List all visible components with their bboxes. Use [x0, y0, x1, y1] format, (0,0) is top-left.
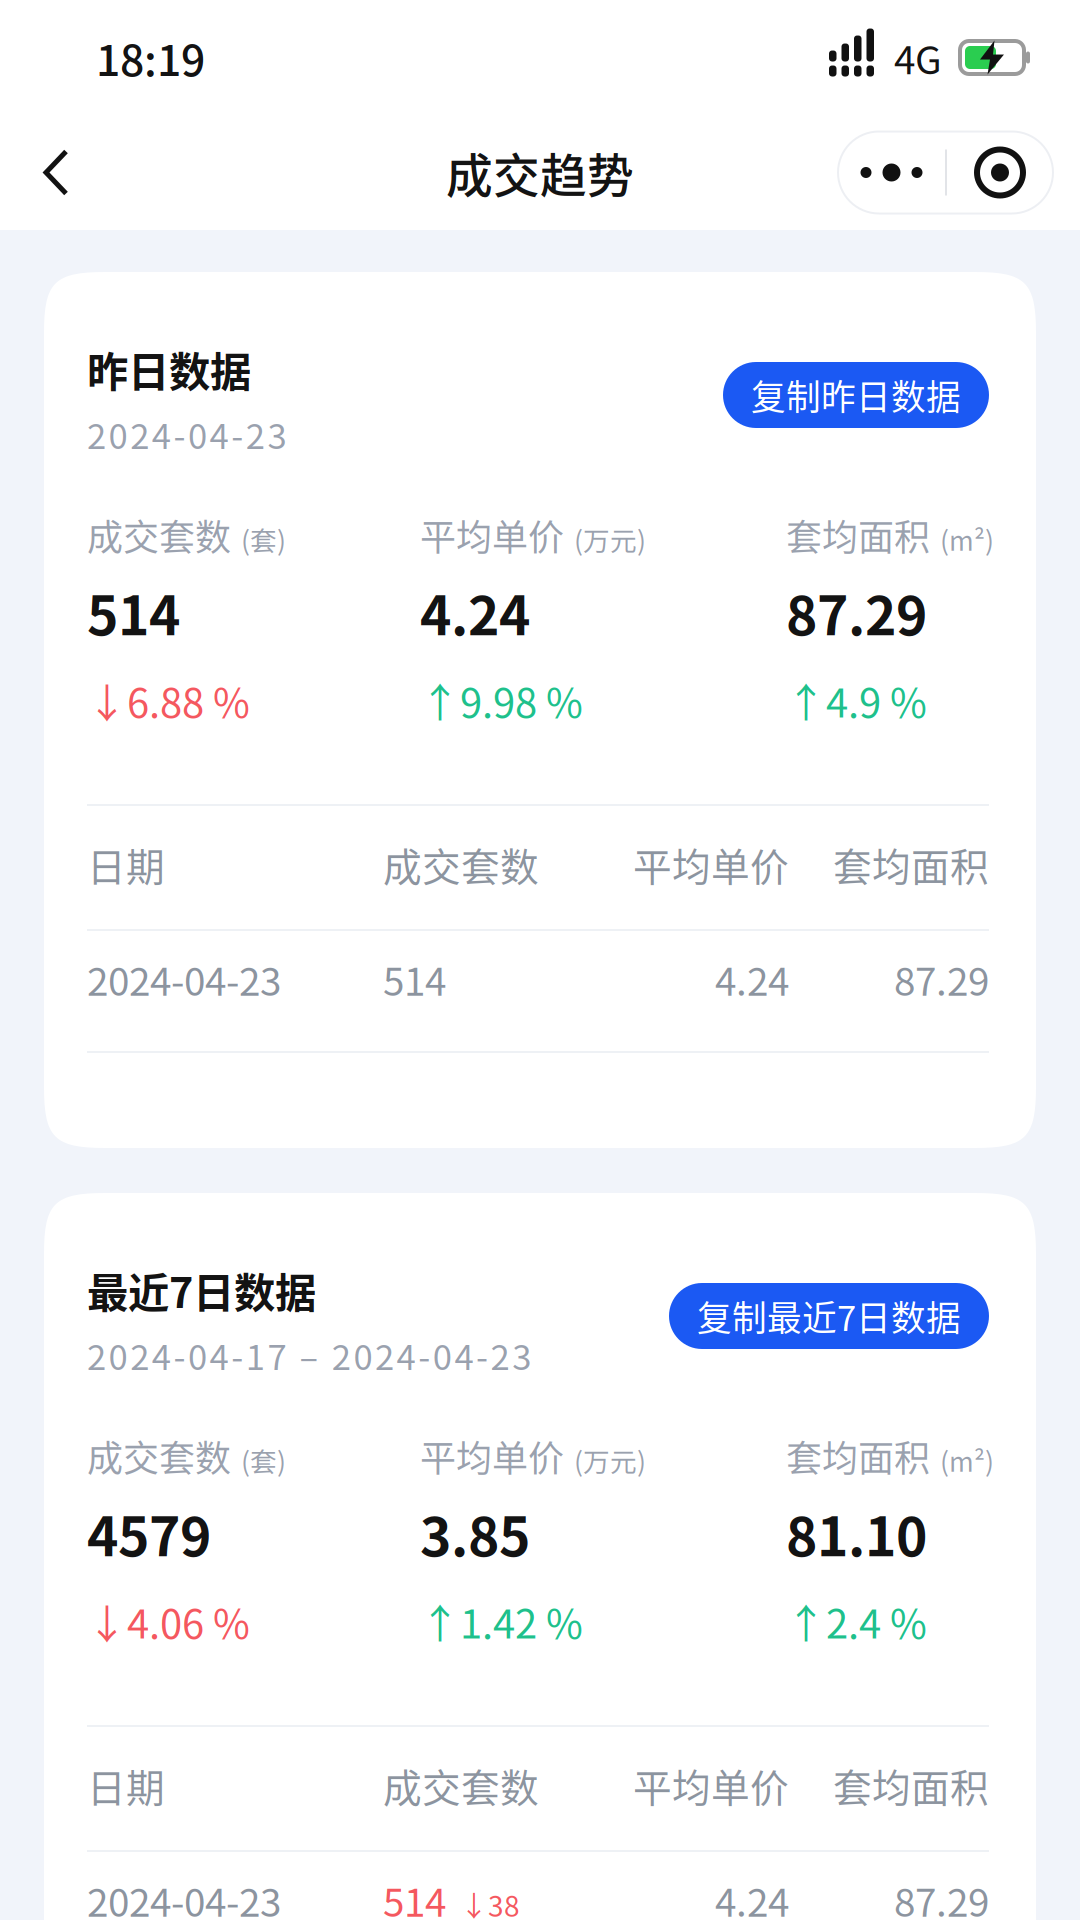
- staticText: 成交套数: [87, 509, 231, 561]
- staticText: 4579: [87, 1494, 211, 1572]
- staticText: ↓6.88 %: [87, 671, 250, 729]
- staticText: 2024-04-23: [87, 409, 286, 459]
- staticText: (m²): [940, 1441, 994, 1479]
- button[interactable]: 复制最近7日数据: [669, 1283, 989, 1349]
- staticText: ↑9.98 %: [420, 671, 583, 729]
- staticText: 4G: [894, 29, 942, 85]
- staticText: 514: [87, 573, 180, 651]
- staticText: 套均面积: [833, 1757, 989, 1813]
- staticText: 套均面积: [833, 836, 989, 892]
- staticText: ↑4.9 %: [786, 671, 927, 729]
- button[interactable]: Back: [0, 115, 112, 230]
- staticText: 套均面积: [786, 1430, 930, 1482]
- staticText: 成交套数: [383, 1757, 539, 1813]
- staticText: 18:19: [96, 27, 205, 88]
- staticText: 2024-04-23: [87, 951, 281, 1007]
- staticText: ↑1.42 %: [420, 1592, 583, 1650]
- staticText: 87.29: [894, 951, 989, 1007]
- staticText: 平均单价: [420, 1430, 564, 1482]
- staticText: 套均面积: [786, 509, 930, 561]
- staticText: (万元): [574, 520, 646, 558]
- staticText: 平均单价: [633, 836, 789, 892]
- staticText: 成交套数: [87, 1430, 231, 1482]
- staticText: 4.24: [715, 951, 789, 1007]
- staticText: 4.24: [715, 1872, 789, 1920]
- staticText: 日期: [87, 1757, 165, 1813]
- staticText: 87.29: [894, 1872, 989, 1920]
- staticText: 2024-04-17 – 2024-04-23: [87, 1330, 531, 1380]
- staticText: 昨日数据: [87, 339, 251, 399]
- staticText: ↑2.4 %: [786, 1592, 927, 1650]
- staticText: 514: [383, 1872, 446, 1920]
- staticText: 成交套数: [383, 836, 539, 892]
- staticText: 成交趋势: [446, 139, 634, 206]
- staticText: 2024-04-23: [87, 1872, 281, 1920]
- staticText: 514: [383, 951, 446, 1007]
- staticText: 81.10: [786, 1494, 927, 1572]
- staticText: 4.24: [420, 573, 530, 651]
- staticText: (套): [241, 520, 286, 558]
- staticText: 3.85: [420, 1494, 530, 1572]
- staticText: ↓38: [460, 1884, 520, 1920]
- staticText: (套): [241, 1441, 286, 1479]
- staticText: ↓4.06 %: [87, 1592, 250, 1650]
- staticText: 日期: [87, 836, 165, 892]
- staticText: (万元): [574, 1441, 646, 1479]
- staticText: 平均单价: [420, 509, 564, 561]
- staticText: 87.29: [786, 573, 927, 651]
- staticText: (m²): [940, 520, 994, 558]
- staticText: 平均单价: [633, 1757, 789, 1813]
- staticText: 复制昨日数据: [751, 370, 961, 420]
- staticText: 复制最近7日数据: [697, 1291, 961, 1341]
- staticText: 最近7日数据: [87, 1260, 316, 1320]
- button[interactable]: More: [838, 131, 1053, 213]
- button[interactable]: 复制昨日数据: [723, 362, 989, 428]
